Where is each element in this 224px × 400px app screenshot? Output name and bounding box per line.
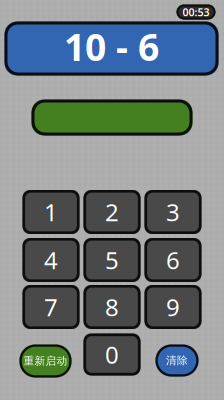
button[interactable]: 6 (144, 238, 201, 282)
staticText: 9 (166, 291, 180, 323)
button[interactable]: 5 (83, 238, 140, 282)
button[interactable]: 9 (144, 285, 201, 329)
staticText: 00:53 (182, 5, 209, 19)
staticText: 重新启动 (23, 354, 67, 367)
button[interactable]: 3 (144, 190, 201, 234)
button[interactable]: 4 (22, 238, 79, 282)
staticText: 7 (44, 291, 58, 323)
staticText: 1 (44, 196, 58, 228)
button[interactable]: 2 (83, 190, 140, 234)
staticText: 10 - 6 (64, 22, 159, 71)
staticText: 0 (105, 339, 119, 370)
button[interactable]: 重新启动 (19, 344, 71, 377)
button[interactable]: 1 (22, 190, 79, 234)
button[interactable]: 清除 (155, 344, 198, 376)
staticText: 6 (166, 244, 180, 276)
staticText: 清除 (166, 354, 188, 367)
staticText: 5 (105, 244, 119, 276)
staticText: 4 (44, 244, 58, 276)
staticText: 2 (105, 196, 119, 228)
button[interactable]: 0 (83, 333, 140, 375)
button[interactable]: 7 (22, 285, 79, 329)
button[interactable]: 8 (83, 285, 140, 329)
staticText: 3 (166, 196, 180, 228)
staticText: 8 (105, 291, 119, 323)
